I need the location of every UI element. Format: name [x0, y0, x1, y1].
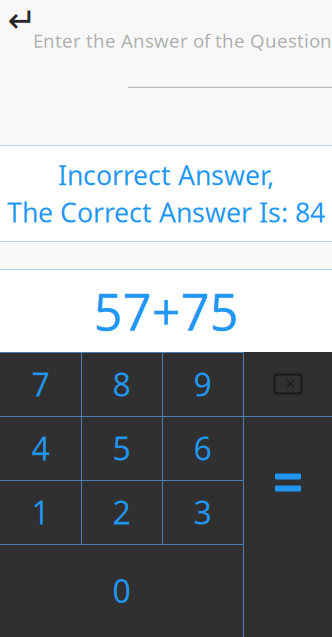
staticText: 4 — [31, 427, 49, 469]
staticText: Incorrect Answer, — [58, 157, 274, 192]
button[interactable]: Equals — [244, 416, 332, 637]
staticText: 9 — [193, 363, 211, 405]
staticText: 7 — [31, 363, 49, 405]
staticText: 57+75 — [93, 277, 238, 345]
button[interactable]: 4 — [0, 416, 81, 480]
staticText: The Correct Answer Is: 84 — [7, 194, 325, 230]
button[interactable]: 9 — [162, 352, 243, 416]
button[interactable]: 5 — [81, 416, 162, 480]
button[interactable]: Delete — [244, 352, 332, 416]
button[interactable]: 8 — [81, 352, 162, 416]
button[interactable]: 7 — [0, 352, 81, 416]
staticText: 2 — [112, 491, 130, 533]
staticText: 6 — [193, 427, 211, 469]
staticText: ↵ — [7, 0, 36, 40]
staticText: 5 — [112, 427, 130, 469]
staticText: Enter the Answer of the Question — [33, 28, 332, 53]
button[interactable]: 6 — [162, 416, 243, 480]
button[interactable]: 3 — [162, 480, 243, 544]
staticText: ✕ — [284, 376, 296, 392]
staticText: 1 — [31, 491, 49, 533]
button[interactable]: 2 — [81, 480, 162, 544]
staticText: 0 — [112, 569, 130, 612]
staticText: 3 — [193, 491, 211, 533]
staticText: 8 — [112, 363, 130, 405]
button[interactable]: 1 — [0, 480, 81, 544]
button[interactable]: Back — [0, 0, 44, 40]
button[interactable]: 0 — [0, 544, 243, 637]
